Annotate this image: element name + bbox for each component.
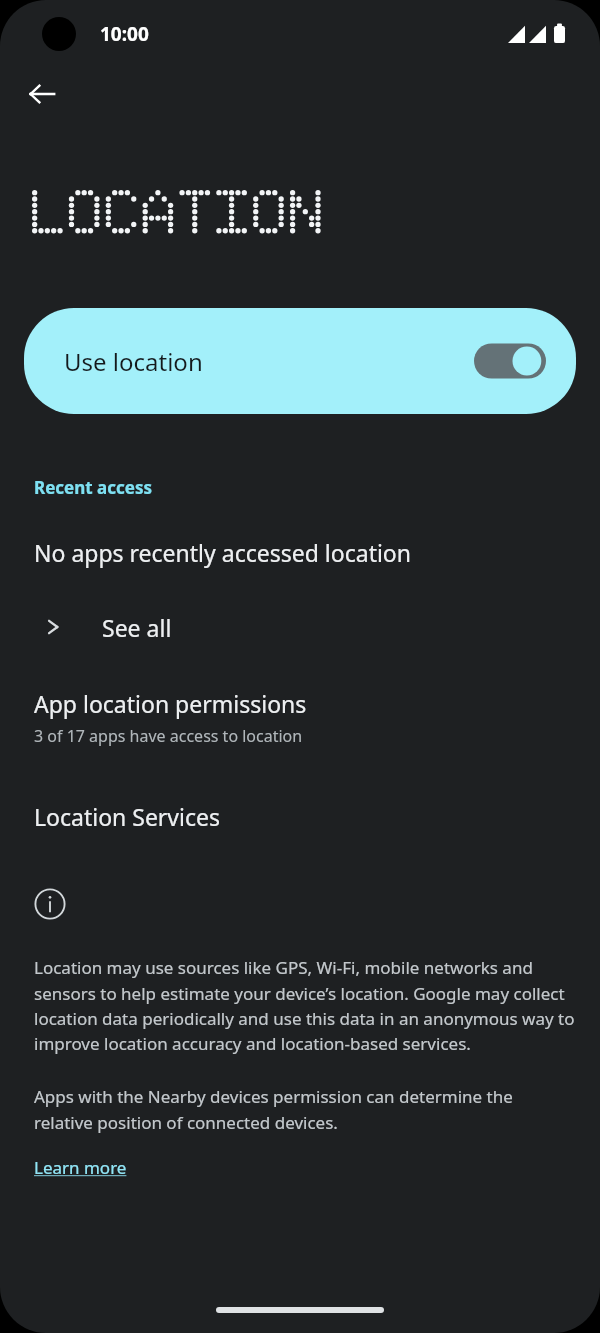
staticText: Use location bbox=[64, 345, 203, 378]
staticText: Apps with the Nearby devices permission … bbox=[34, 1085, 570, 1134]
staticText: Learn more bbox=[34, 1156, 127, 1179]
staticText: 3 of 17 apps have access to location bbox=[34, 725, 303, 747]
button[interactable]: Use location bbox=[24, 308, 576, 414]
staticText: Location Services bbox=[34, 801, 221, 832]
button[interactable]: Location Services bbox=[0, 799, 600, 836]
staticText: 10:00 bbox=[100, 21, 149, 47]
staticText: No apps recently accessed location bbox=[34, 537, 411, 568]
button[interactable]: App location permissions bbox=[0, 686, 600, 753]
button[interactable]: Learn more bbox=[34, 1156, 127, 1179]
staticText: Recent access bbox=[34, 476, 153, 499]
button[interactable]: Back bbox=[20, 72, 64, 116]
staticText: App location permissions bbox=[34, 688, 307, 719]
button[interactable]: See all bbox=[0, 598, 600, 656]
staticText: Location may use sources like GPS, Wi-Fi… bbox=[34, 956, 578, 1055]
staticText: See all bbox=[102, 612, 172, 643]
